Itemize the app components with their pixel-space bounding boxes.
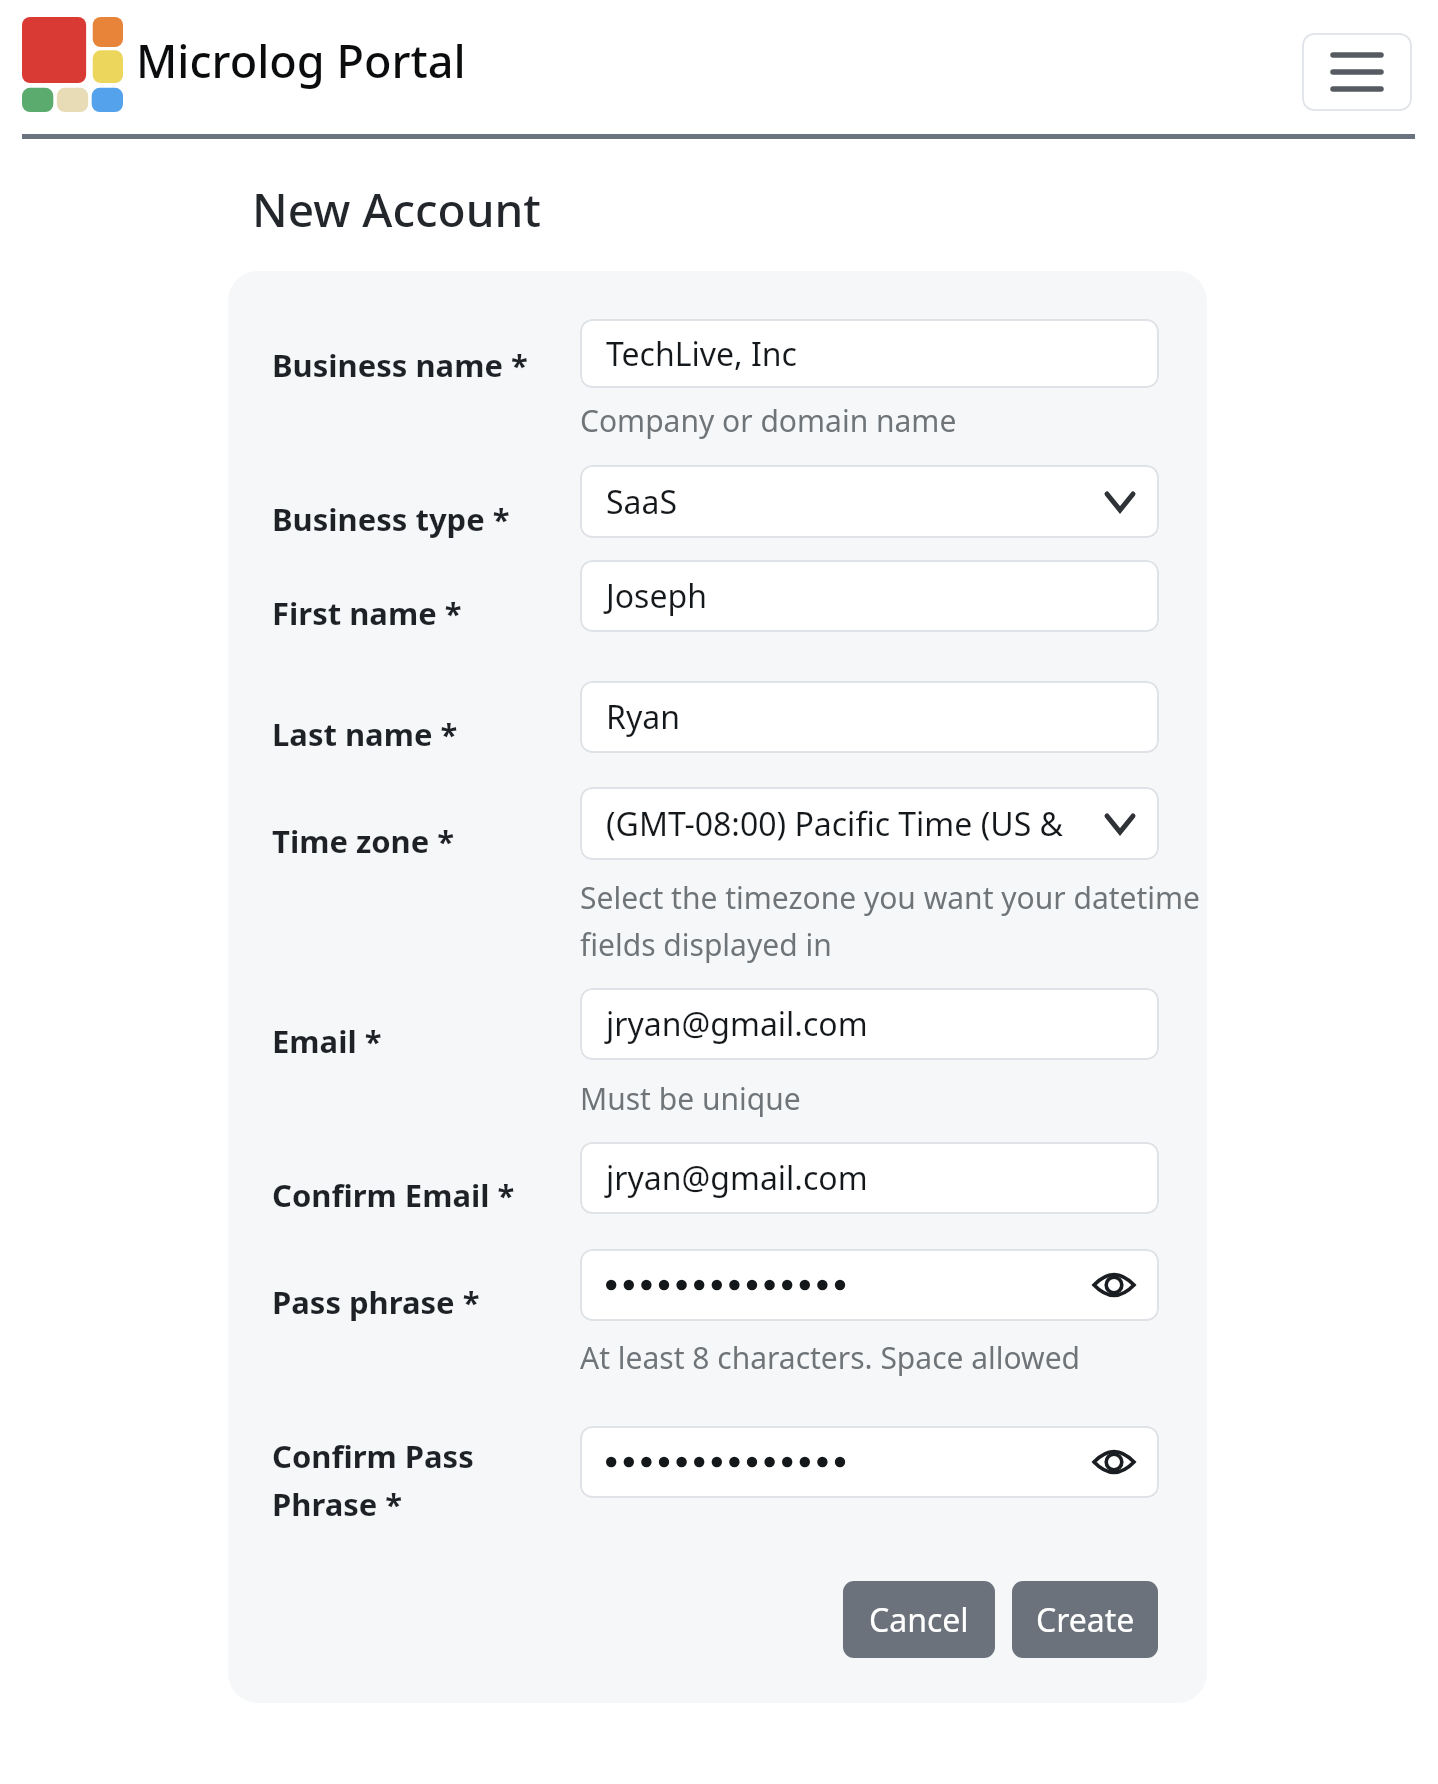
staticText: fields displayed in — [580, 924, 832, 965]
button[interactable]: TechLive, Inc — [580, 319, 1159, 388]
staticText: Pass phrase * — [272, 1281, 480, 1323]
staticText: Email * — [272, 1020, 382, 1062]
button[interactable]: Show pass phrase — [580, 1249, 1159, 1321]
button[interactable]: Open menu — [1302, 33, 1412, 111]
staticText: Phrase * — [272, 1483, 403, 1525]
button[interactable]: Cancel — [843, 1581, 995, 1658]
staticText: New Account — [252, 178, 541, 241]
staticText: SaaS — [606, 480, 678, 524]
button[interactable]: SaaS — [580, 465, 1159, 538]
staticText: Create — [1036, 1598, 1135, 1642]
button[interactable]: (GMT-08:00) Pacific Time (US & — [580, 787, 1159, 860]
button[interactable]: Show pass phrase — [1089, 1260, 1139, 1310]
button[interactable]: Create — [1012, 1581, 1158, 1658]
staticText: Last name * — [272, 713, 458, 755]
staticText: Business type * — [272, 498, 510, 540]
staticText: Confirm Pass — [272, 1435, 474, 1477]
staticText: Must be unique — [580, 1078, 801, 1119]
staticText: Company or domain name — [580, 400, 957, 441]
button[interactable]: jryan@gmail.com — [580, 988, 1159, 1060]
staticText: jryan@gmail.com — [606, 1156, 868, 1200]
button[interactable]: Joseph — [580, 560, 1159, 632]
staticText: Select the timezone you want your dateti… — [580, 877, 1201, 918]
staticText: Confirm Email * — [272, 1174, 515, 1216]
staticText: Cancel — [869, 1598, 969, 1642]
staticText: First name * — [272, 592, 462, 634]
staticText: Microlog Portal — [136, 30, 466, 91]
staticText: (GMT-08:00) Pacific Time (US & — [606, 802, 1063, 846]
button[interactable]: Ryan — [580, 681, 1159, 753]
staticText: Business name * — [272, 344, 528, 386]
staticText: At least 8 characters. Space allowed — [580, 1337, 1081, 1378]
staticText: Joseph — [606, 574, 707, 618]
staticText: Ryan — [606, 695, 680, 739]
staticText: jryan@gmail.com — [606, 1002, 868, 1046]
button[interactable]: Show pass phrase — [580, 1426, 1159, 1498]
staticText: TechLive, Inc — [606, 332, 797, 376]
staticText: Time zone * — [272, 820, 455, 862]
button[interactable]: jryan@gmail.com — [580, 1142, 1159, 1214]
button[interactable]: Show pass phrase — [1089, 1437, 1139, 1487]
